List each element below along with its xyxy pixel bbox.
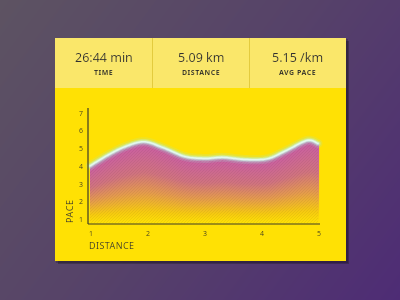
staticText: 4 <box>79 162 84 171</box>
staticText: 2 <box>79 197 84 206</box>
staticText: AVG PACE <box>279 68 317 78</box>
staticText: 3 <box>79 180 84 189</box>
staticText: 1 <box>79 215 84 224</box>
staticText: 5.09 km <box>178 49 225 66</box>
staticText: 5.15 /km <box>272 49 324 66</box>
button[interactable]: 26:44 min <box>55 38 346 261</box>
staticText: 26:44 min <box>75 49 133 66</box>
button[interactable]: 5.15 /km <box>250 38 346 88</box>
button[interactable]: 5.09 km <box>153 38 249 88</box>
staticText: DISTANCE <box>182 68 221 78</box>
staticText: 5 <box>79 144 84 153</box>
button[interactable]: 26:44 min <box>55 38 152 88</box>
staticText: 3 <box>203 229 208 238</box>
staticText: PACE <box>63 199 75 223</box>
staticText: 2 <box>146 229 151 238</box>
staticText: 1 <box>89 229 94 238</box>
staticText: 6 <box>79 126 84 135</box>
staticText: DISTANCE <box>89 239 135 251</box>
staticText: 7 <box>79 109 84 118</box>
staticText: 4 <box>260 229 265 238</box>
staticText: TIME <box>94 68 114 78</box>
staticText: 5 <box>317 229 322 238</box>
